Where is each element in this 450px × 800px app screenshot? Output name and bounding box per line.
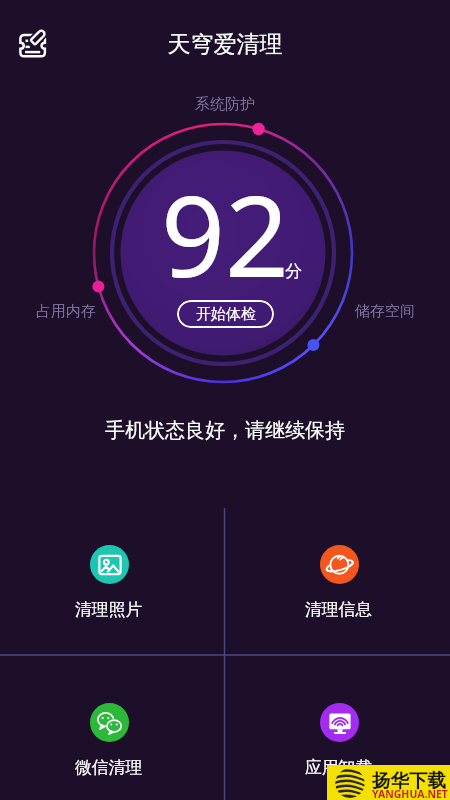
button[interactable]: 开始体检 <box>177 300 274 328</box>
staticText: 天穹爱清理 <box>0 30 450 59</box>
button[interactable]: 应用卸载 <box>239 662 439 782</box>
staticText: 扬华下载 <box>372 769 446 792</box>
staticText: 应用卸载 <box>305 757 373 778</box>
staticText: 储存空间 <box>355 302 415 321</box>
button[interactable]: 微信清理 <box>9 662 209 782</box>
staticText: 92 <box>161 157 290 310</box>
button[interactable]: 清理信息 <box>239 504 439 624</box>
staticText: 手机状态良好，请继续保持 <box>0 418 450 443</box>
staticText: 清理照片 <box>75 599 143 620</box>
staticText: 清理信息 <box>305 599 373 620</box>
staticText: 开始体检 <box>196 305 256 324</box>
staticText: 占用内存 <box>36 302 96 321</box>
button[interactable]: 清理照片 <box>9 504 209 624</box>
staticText: YANGHUA.NET <box>372 787 448 800</box>
button[interactable]: Feedback <box>12 22 58 68</box>
staticText: 分 <box>285 261 302 282</box>
staticText: 系统防护 <box>0 95 450 114</box>
staticText: 微信清理 <box>75 757 143 778</box>
